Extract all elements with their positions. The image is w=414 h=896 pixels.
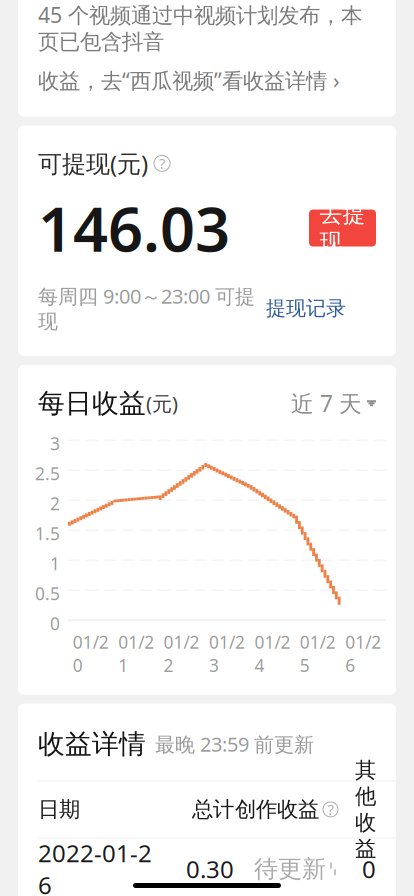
staticText: 45 个视频通过中视频计划发布，本页已包含抖音 bbox=[38, 1, 362, 55]
staticText: 最晚 23:59 前更新 bbox=[155, 731, 314, 757]
staticText: 总计 bbox=[192, 796, 234, 822]
staticText: ? bbox=[159, 154, 165, 173]
staticText: 每周四 9:00～23:00 可提现 bbox=[38, 283, 255, 334]
staticText: 0.30 bbox=[186, 853, 234, 885]
staticText: 近 7 天 bbox=[291, 388, 362, 418]
staticText: 待更新 bbox=[254, 854, 326, 884]
staticText: 1 bbox=[50, 552, 60, 575]
staticText: 01/25 bbox=[300, 631, 336, 677]
button[interactable]: 提现记录 bbox=[266, 296, 346, 321]
staticText: 01/24 bbox=[254, 631, 290, 677]
staticText: 2022-01-26 bbox=[38, 837, 152, 896]
staticText: 0 bbox=[362, 853, 376, 885]
button[interactable]: 45 个视频通过中视频计划发布，本页已包含抖音 bbox=[18, 0, 396, 116]
staticText: 收益，去“西瓜视频”看收益详情 › bbox=[38, 66, 340, 94]
staticText: 日期 bbox=[38, 796, 80, 822]
staticText: 01/22 bbox=[164, 631, 200, 677]
staticText: ? bbox=[327, 800, 333, 819]
staticText: 01/26 bbox=[345, 631, 381, 677]
staticText: 去提现 bbox=[319, 200, 365, 256]
staticText: 可提现(元) bbox=[38, 147, 148, 179]
staticText: 01/20 bbox=[73, 631, 109, 677]
button[interactable]: 2022-01-26 bbox=[18, 838, 396, 896]
staticText: 0 bbox=[50, 612, 60, 635]
staticText: 2 bbox=[50, 492, 60, 515]
staticText: (元) bbox=[146, 390, 178, 417]
staticText: 收益详情 bbox=[38, 728, 146, 760]
button[interactable]: 近 7 天 bbox=[291, 388, 376, 418]
button[interactable]: 可提现说明 bbox=[154, 155, 170, 171]
staticText: 146.03 bbox=[38, 187, 230, 269]
button[interactable]: 去提现 bbox=[309, 209, 376, 246]
staticText: 2.5 bbox=[35, 462, 60, 485]
staticText: 01/21 bbox=[118, 631, 154, 677]
staticText: 创作收益 bbox=[235, 796, 319, 822]
staticText: 提现记录 bbox=[266, 296, 346, 321]
staticText: 其他收益 bbox=[355, 757, 376, 862]
staticText: 每日收益 bbox=[38, 387, 146, 420]
staticText: 1.5 bbox=[35, 522, 60, 545]
staticText: 01/23 bbox=[209, 631, 245, 677]
staticText: 3 bbox=[50, 432, 60, 455]
staticText: 0.5 bbox=[35, 582, 60, 605]
